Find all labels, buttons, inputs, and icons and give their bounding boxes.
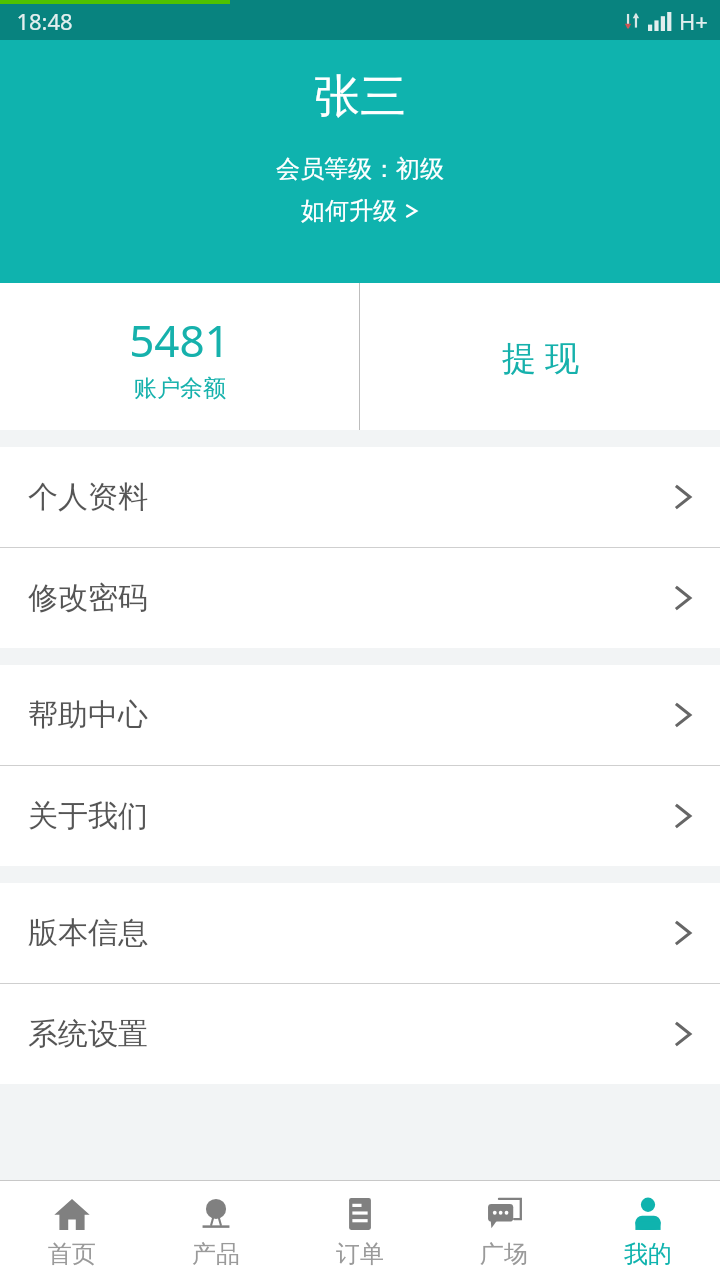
button[interactable]: 关于我们 [0,766,720,866]
button[interactable]: 首页 [0,1193,144,1269]
button[interactable]: 广场 [432,1193,576,1269]
button[interactable]: 提 现 [360,283,720,430]
staticText: 张三 [314,68,406,126]
button[interactable]: 订单 [288,1193,432,1269]
button[interactable]: 系统设置 [0,984,720,1084]
button[interactable]: 产品 [144,1193,288,1269]
staticText: 版本信息 [28,914,148,952]
button[interactable]: 版本信息 [0,883,720,983]
staticText: 提 现 [502,334,579,380]
button[interactable]: 5481 [0,283,359,430]
button[interactable]: 我的 [576,1193,720,1269]
staticText: 帮助中心 [28,696,148,734]
staticText: 18:48 [16,6,73,36]
staticText: 首页 [48,1239,96,1269]
button[interactable]: 如何升级 [293,194,427,228]
staticText: 产品 [192,1239,240,1269]
staticText: 个人资料 [28,478,148,516]
staticText: 修改密码 [28,579,148,617]
staticText: H+ [679,6,708,36]
staticText: 账户余额 [134,374,226,403]
staticText: 我的 [624,1239,672,1269]
button[interactable]: 修改密码 [0,548,720,648]
staticText: 订单 [336,1239,384,1269]
staticText: 系统设置 [28,1015,148,1053]
staticText: 5481 [129,310,230,370]
button[interactable]: 个人资料 [0,447,720,547]
staticText: 会员等级：初级 [276,154,444,184]
staticText: 广场 [480,1239,528,1269]
button[interactable]: 帮助中心 [0,665,720,765]
staticText: 如何升级 [301,196,397,226]
staticText: 关于我们 [28,797,148,835]
